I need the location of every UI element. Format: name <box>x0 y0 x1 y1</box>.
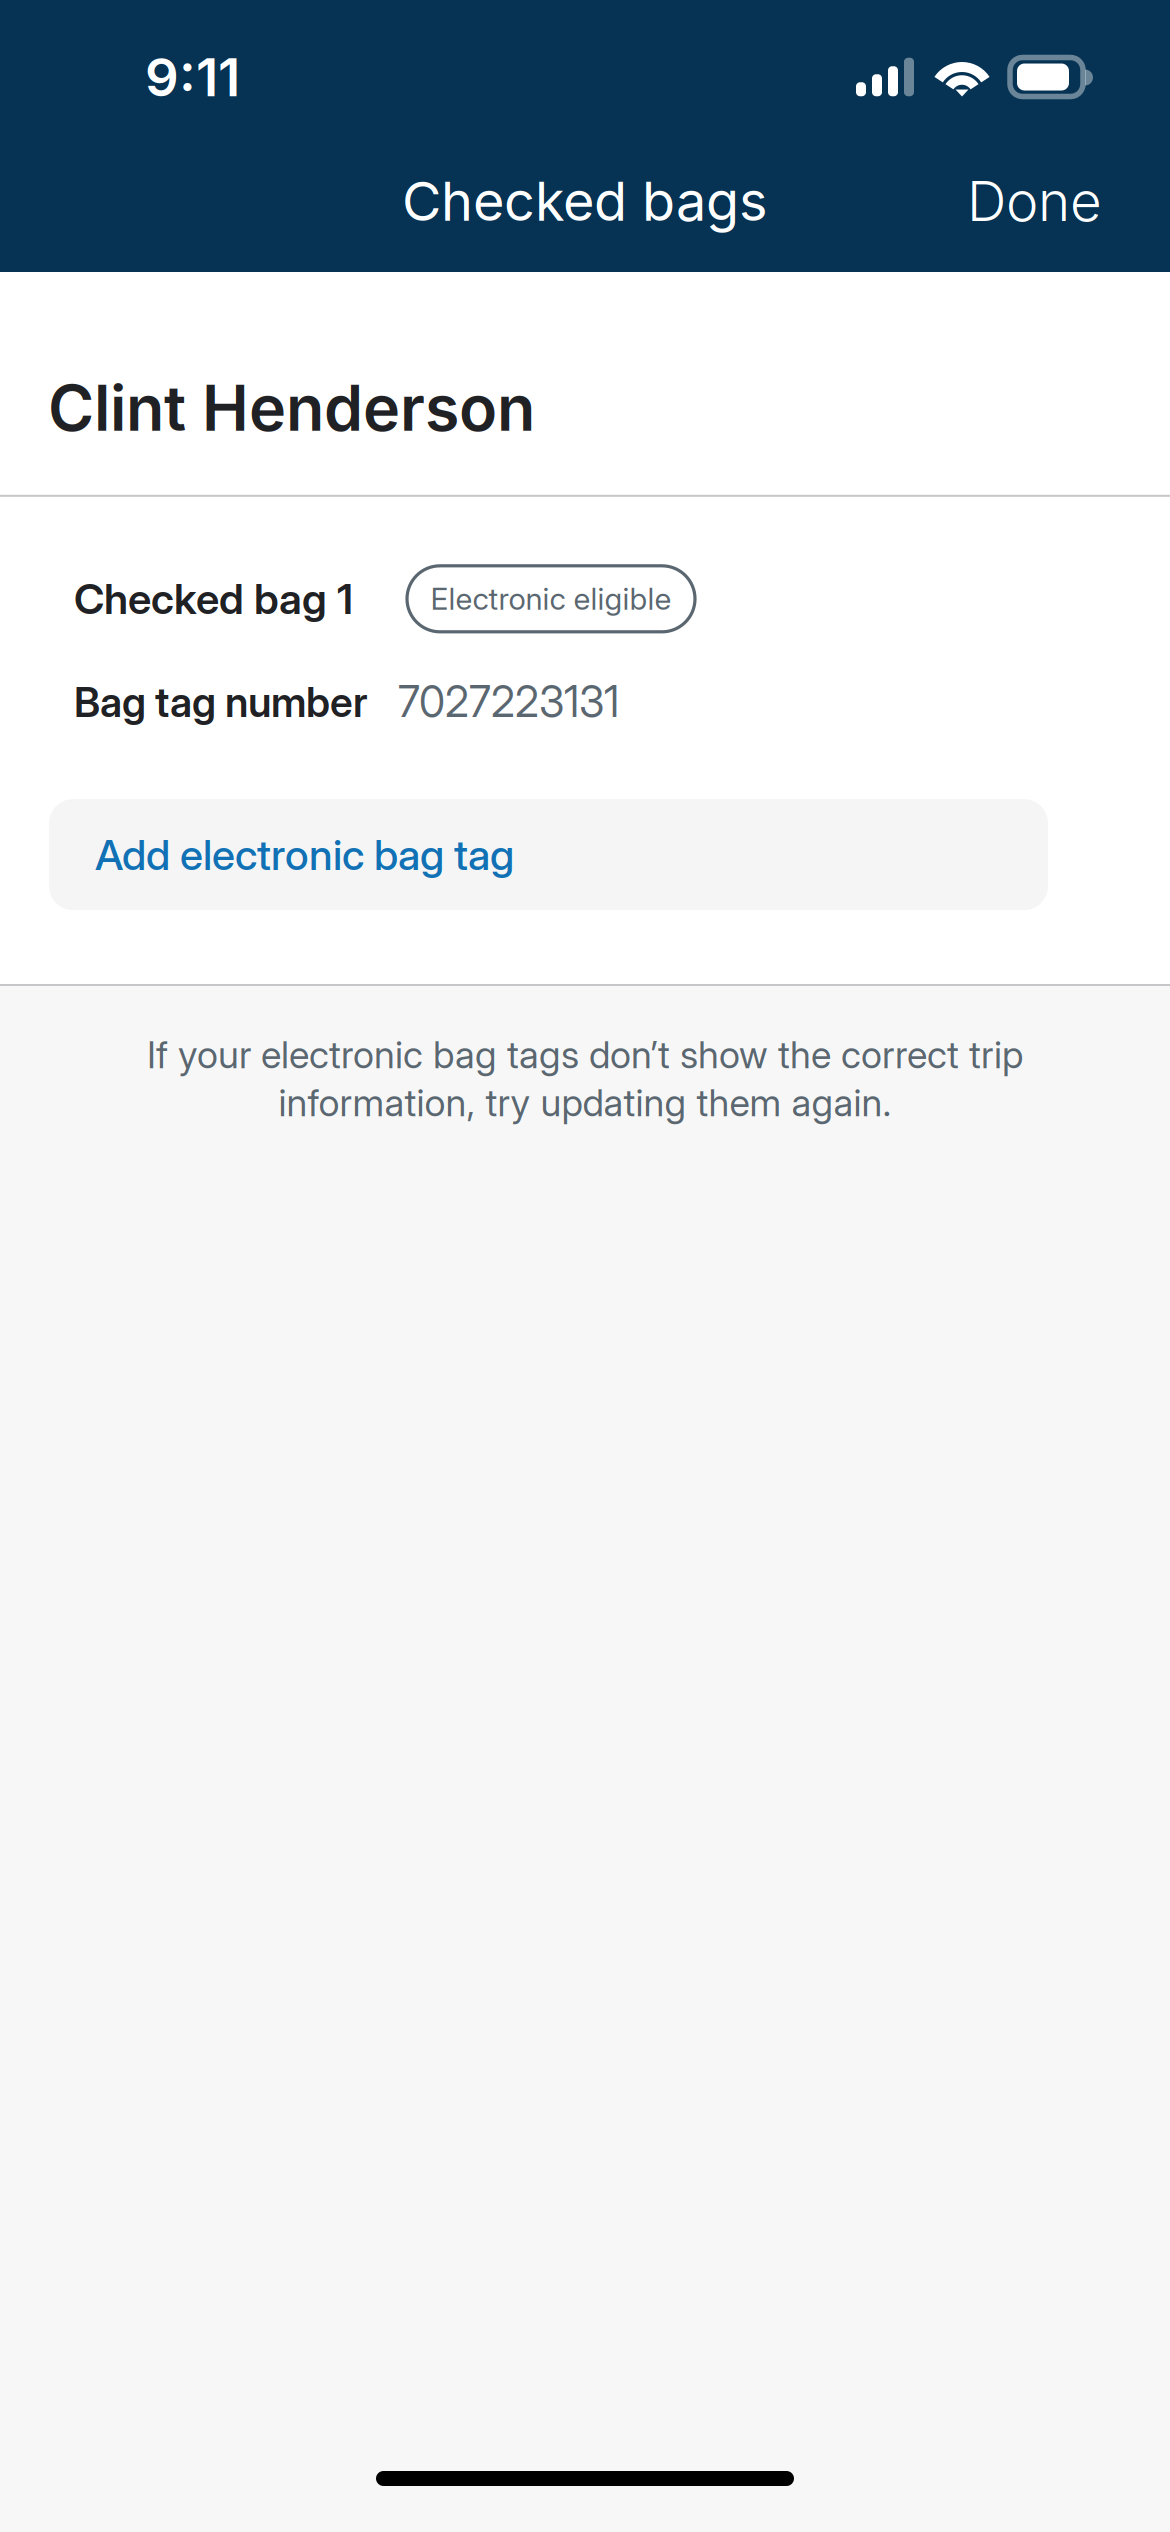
staticText: Add electronic bag tag <box>95 829 514 880</box>
button[interactable]: Done <box>947 144 1122 258</box>
staticText: 7027223131 <box>398 676 619 727</box>
staticText: Done <box>967 168 1102 234</box>
button[interactable]: Add electronic bag tag <box>49 799 1048 910</box>
staticText: Checked bag 1 <box>74 573 353 624</box>
staticText: Clint Henderson <box>48 370 535 446</box>
staticText: 9:11 <box>145 45 240 109</box>
staticText: information, try updating them again. <box>278 1080 891 1125</box>
staticText: If your electronic bag tags don’t show t… <box>147 1032 1023 1077</box>
staticText: Checked bags <box>402 168 768 234</box>
staticText: Bag tag number <box>74 677 368 727</box>
staticText: Electronic eligible <box>430 581 671 617</box>
